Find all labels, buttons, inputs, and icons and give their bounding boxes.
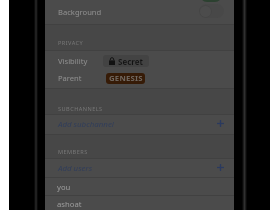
button[interactable]: Add users <box>45 158 234 178</box>
button[interactable]: Add subchannel <box>45 114 234 134</box>
staticText: PRIVACY <box>58 39 84 47</box>
staticText: Add subchannel <box>58 119 114 130</box>
staticText: Parent <box>58 73 82 83</box>
staticText: Visibility <box>58 56 88 66</box>
button[interactable]: Secret <box>103 55 149 67</box>
button[interactable]: ashoat <box>45 195 234 210</box>
staticText: MEMBERS <box>58 148 88 156</box>
staticText: SUBCHANNELS <box>58 105 103 113</box>
staticText: Secret <box>118 56 143 67</box>
staticText: Add users <box>58 163 93 174</box>
button[interactable]: Background <box>45 0 234 24</box>
staticText: GENESIS <box>109 73 143 84</box>
staticText: you <box>57 182 71 192</box>
button[interactable]: GENESIS <box>106 73 145 84</box>
staticText: ashoat <box>57 199 82 209</box>
other: Add <box>217 164 224 171</box>
other: Add <box>217 120 224 127</box>
button[interactable]: you <box>45 177 234 195</box>
button[interactable]: Visibility <box>45 50 234 69</box>
staticText: Background <box>58 7 102 17</box>
button[interactable]: Parent <box>45 69 234 88</box>
